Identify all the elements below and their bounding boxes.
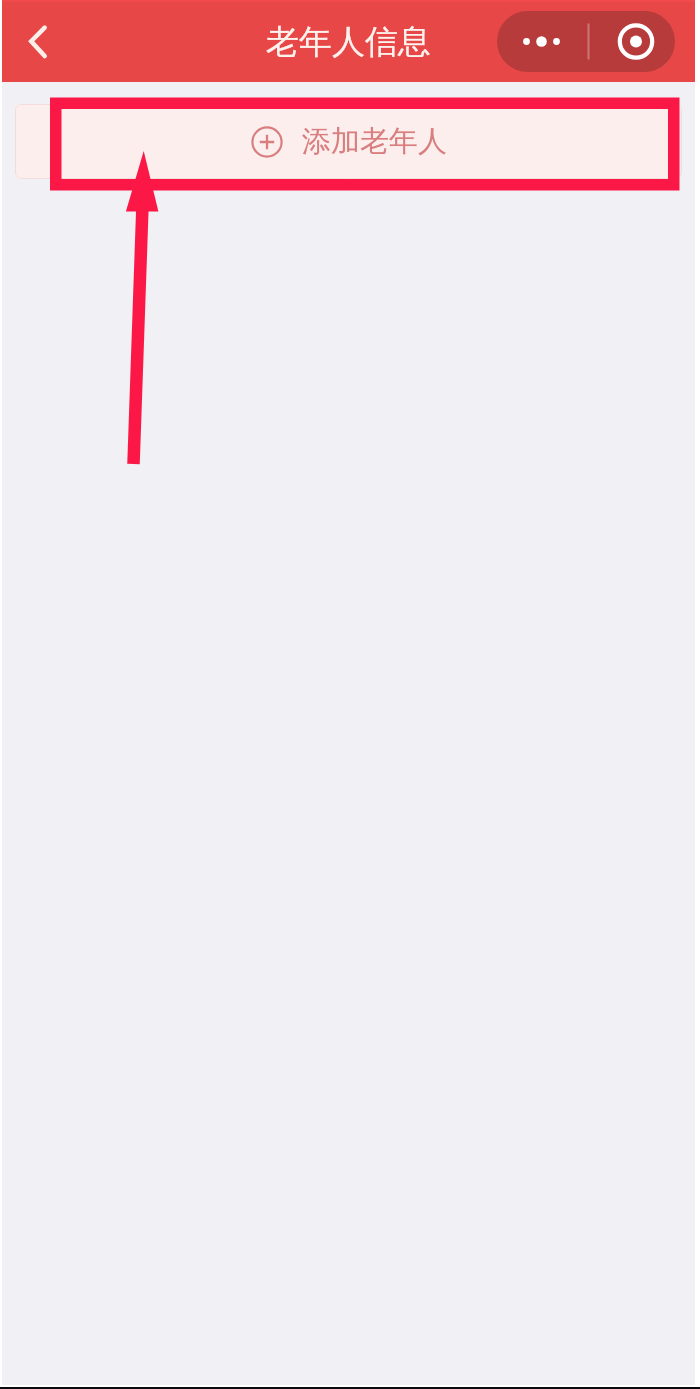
button[interactable]: Back [16, 19, 60, 63]
staticText: 添加老年人 [302, 123, 447, 160]
button[interactable]: More options and close mini program [497, 11, 675, 72]
button[interactable]: 添加老年人 [15, 104, 682, 179]
staticText: 老年人信息 [266, 21, 431, 63]
